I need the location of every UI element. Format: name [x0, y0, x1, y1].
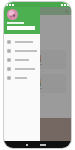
- button[interactable]: [4, 55, 40, 64]
- button[interactable]: [4, 37, 40, 46]
- button[interactable]: [4, 64, 40, 73]
- button[interactable]: [4, 46, 40, 55]
- button[interactable]: [9, 36, 34, 41]
- button[interactable]: [9, 50, 66, 69]
- button[interactable]: [9, 74, 66, 93]
- button[interactable]: [4, 73, 40, 82]
